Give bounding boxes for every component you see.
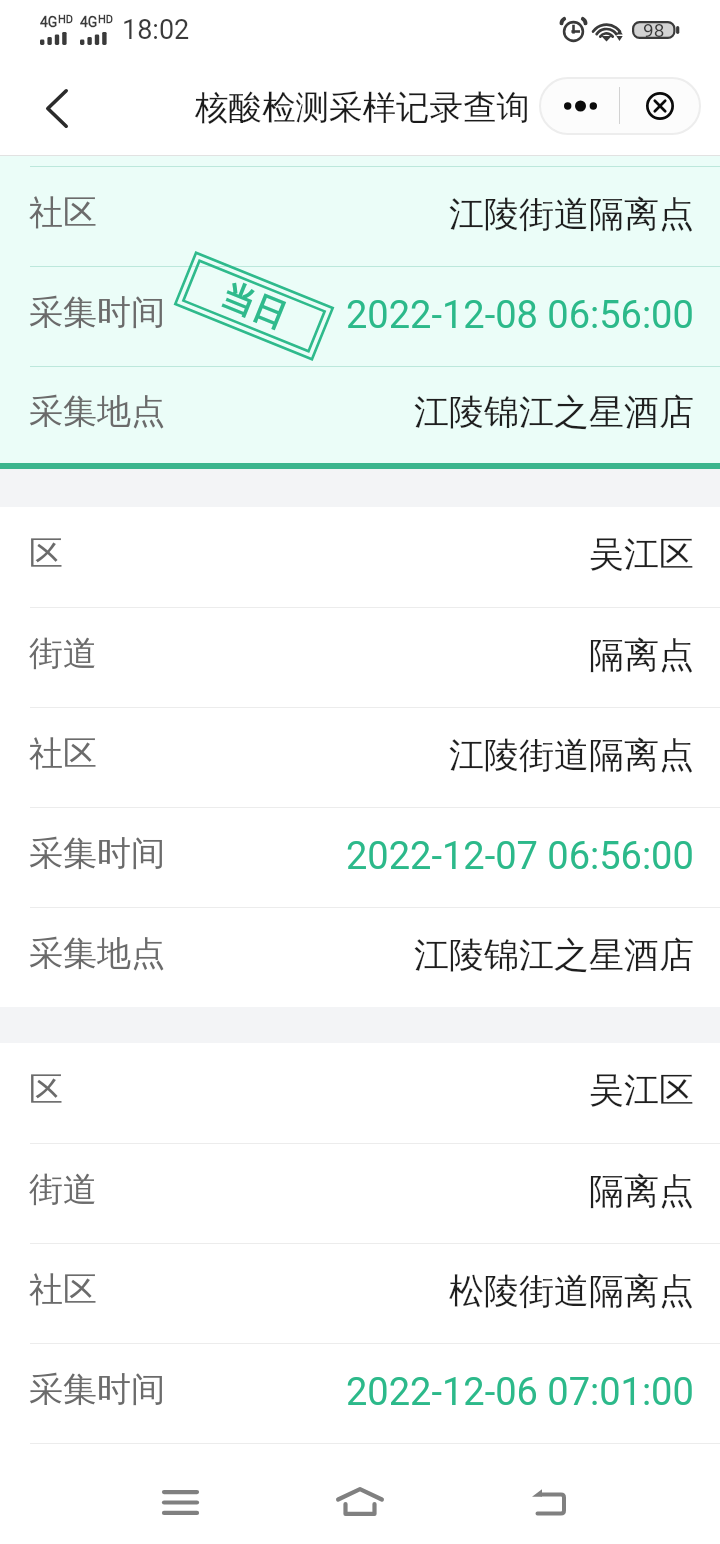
button[interactable]: 社区 bbox=[29, 1244, 694, 1343]
button[interactable]: 采集地点 bbox=[29, 908, 694, 1007]
button[interactable]: 采集地点 bbox=[29, 367, 694, 463]
staticText: 社区 bbox=[29, 1268, 97, 1311]
button[interactable]: 返回 bbox=[24, 75, 90, 141]
button[interactable]: 区 bbox=[29, 507, 694, 607]
staticText: 采集时间 bbox=[29, 291, 165, 334]
staticText: 当日 bbox=[215, 274, 292, 338]
staticText: 社区 bbox=[29, 732, 97, 775]
button[interactable]: 社区 bbox=[29, 167, 694, 266]
staticText: 吴江区 bbox=[589, 1068, 694, 1112]
staticText: HD bbox=[98, 13, 114, 26]
staticText: 采集时间 bbox=[29, 1368, 165, 1411]
staticText: 区 bbox=[29, 1068, 63, 1111]
staticText: 江陵街道隔离点 bbox=[449, 192, 694, 236]
staticText: 98 bbox=[643, 19, 665, 41]
staticText: 采集地点 bbox=[29, 932, 165, 975]
staticText: 松陵街道隔离点 bbox=[449, 1269, 694, 1313]
staticText: 街道 bbox=[29, 632, 97, 675]
button[interactable]: 街道 bbox=[29, 608, 694, 707]
button[interactable]: 主页 bbox=[320, 1469, 400, 1533]
staticText: 2022-12-08 06:56:00 bbox=[346, 293, 694, 338]
button[interactable]: 社区 bbox=[29, 708, 694, 807]
button[interactable]: 返回 bbox=[509, 1471, 589, 1535]
staticText: 区 bbox=[29, 532, 63, 575]
button[interactable]: 区 bbox=[29, 1043, 694, 1143]
staticText: 街道 bbox=[29, 1168, 97, 1211]
button[interactable]: 采集时间 bbox=[29, 808, 694, 907]
staticText: 隔离点 bbox=[589, 633, 694, 677]
button[interactable]: 街道 bbox=[29, 1144, 694, 1243]
staticText: 2022-12-06 07:01:00 bbox=[346, 1370, 694, 1415]
staticText: 4G bbox=[80, 14, 98, 30]
staticText: 18:02 bbox=[122, 14, 190, 46]
staticText: HD bbox=[58, 13, 74, 26]
button[interactable]: 采集时间 bbox=[29, 1344, 694, 1443]
staticText: 隔离点 bbox=[589, 1169, 694, 1213]
staticText: 核酸检测采样记录查询 bbox=[195, 87, 530, 129]
staticText: 社区 bbox=[29, 191, 97, 234]
button[interactable]: 采集时间 bbox=[29, 267, 694, 366]
button[interactable]: 更多 bbox=[540, 78, 620, 134]
staticText: 采集时间 bbox=[29, 832, 165, 875]
staticText: 4G bbox=[40, 14, 58, 30]
staticText: 江陵街道隔离点 bbox=[449, 733, 694, 777]
button[interactable]: 最近任务 bbox=[140, 1470, 221, 1534]
staticText: 江陵锦江之星酒店 bbox=[414, 390, 694, 434]
staticText: 吴江区 bbox=[589, 532, 694, 576]
staticText: 江陵锦江之星酒店 bbox=[414, 933, 694, 977]
button[interactable]: 关闭 bbox=[620, 78, 700, 134]
staticText: 采集地点 bbox=[29, 390, 165, 433]
staticText: 2022-12-07 06:56:00 bbox=[346, 834, 694, 879]
